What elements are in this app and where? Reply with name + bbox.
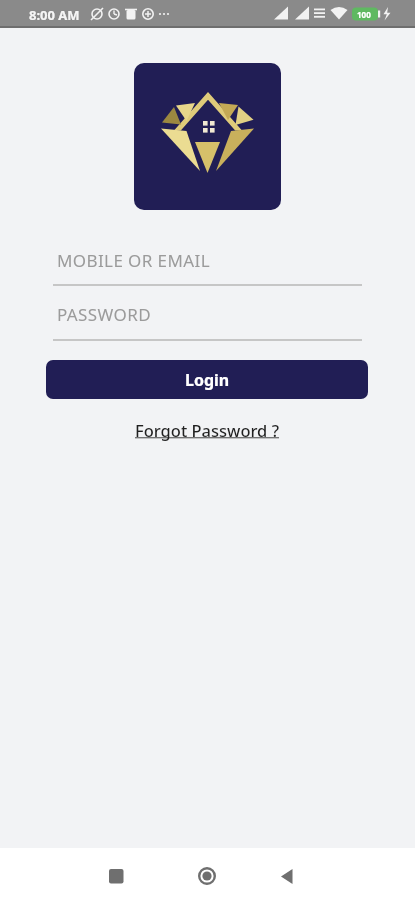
staticText: Login <box>185 369 230 391</box>
staticText: 8:00 AM <box>29 6 80 24</box>
staticText: PASSWORD <box>57 303 152 326</box>
button[interactable]: Login <box>46 360 368 399</box>
button[interactable]: MOBILE OR EMAIL <box>46 240 368 286</box>
button[interactable] <box>96 856 136 896</box>
staticText: 100 <box>357 9 371 20</box>
staticText: MOBILE OR EMAIL <box>57 249 210 272</box>
button[interactable] <box>187 856 227 896</box>
button[interactable]: Forgot Password ? <box>135 419 280 441</box>
button[interactable] <box>267 856 307 896</box>
button[interactable]: PASSWORD <box>46 294 368 340</box>
